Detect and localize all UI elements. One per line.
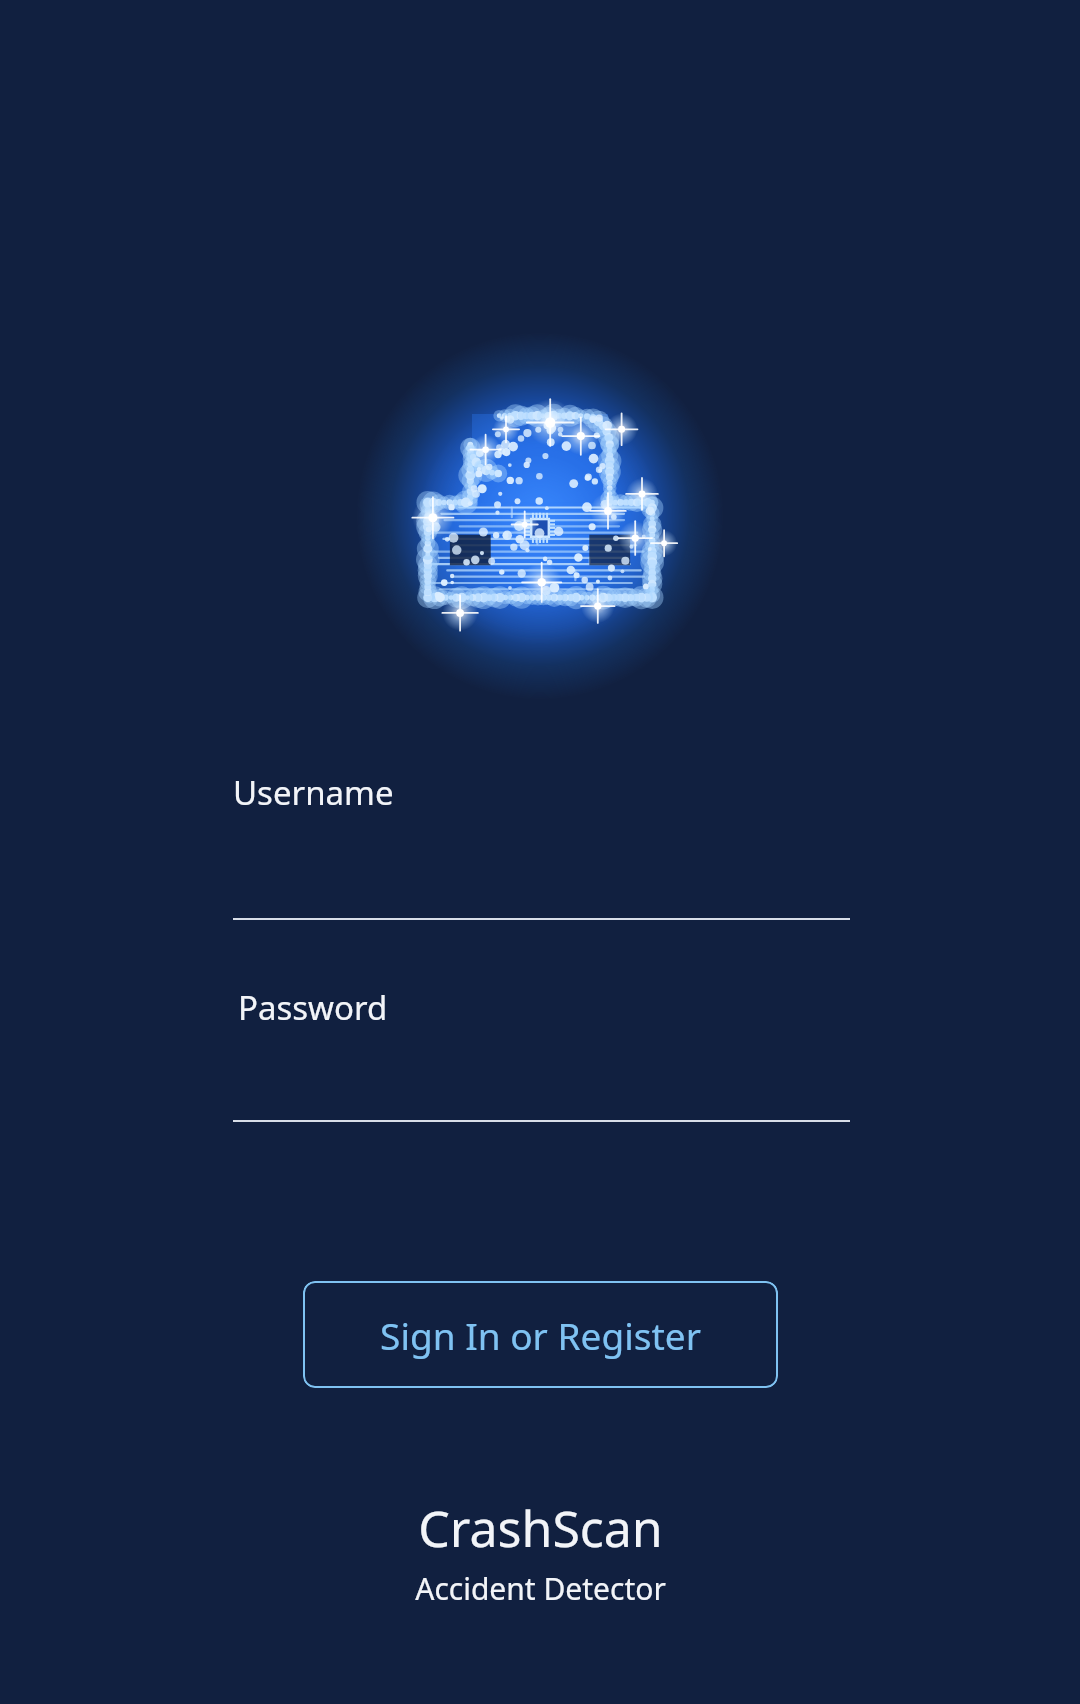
button[interactable]: Username: [233, 770, 850, 920]
staticText: Password: [238, 985, 388, 1030]
button[interactable]: Password: [233, 985, 850, 1122]
staticText: CrashScan: [418, 1494, 663, 1562]
button[interactable]: Sign In or Register: [303, 1281, 778, 1388]
staticText: Username: [233, 770, 394, 815]
staticText: Accident Detector: [415, 1568, 666, 1609]
other: CrashScan logo: [370, 346, 710, 686]
staticText: Sign In or Register: [380, 1310, 701, 1360]
